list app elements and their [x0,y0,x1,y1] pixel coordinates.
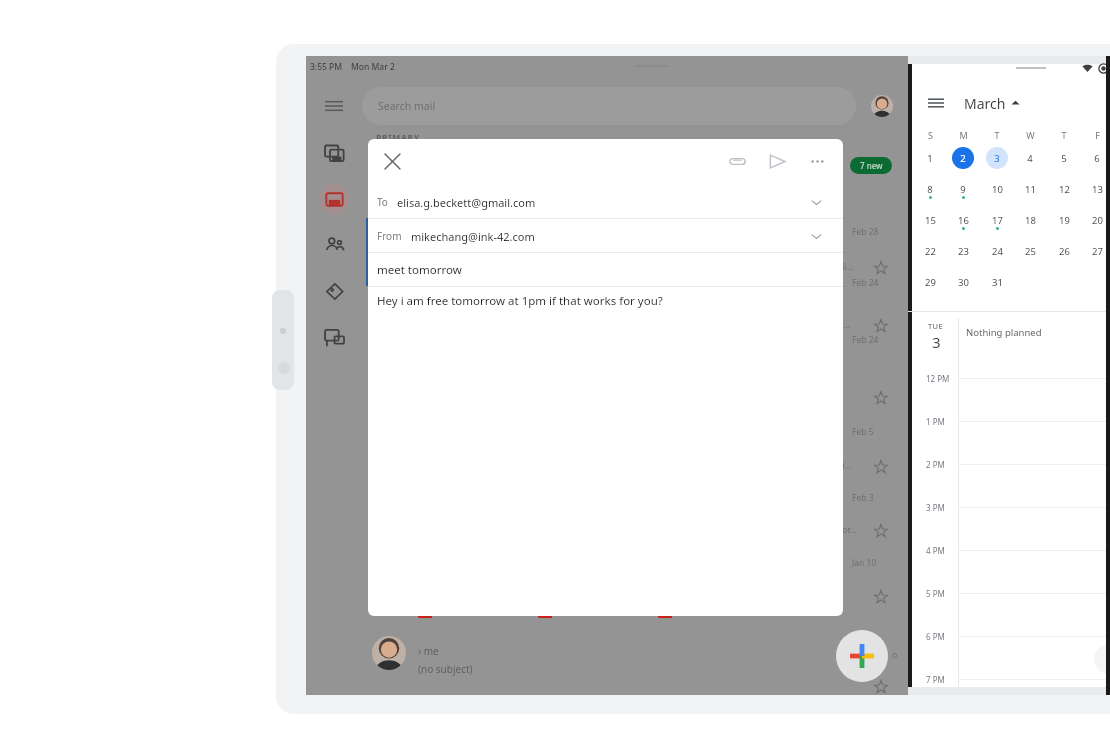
staticText: 7 PM [926,674,945,685]
staticText: 15 [925,214,936,227]
staticText: p… [838,319,850,331]
button[interactable]: Inbox [312,180,356,218]
staticText: 4 PM [926,545,945,556]
staticText: Q… [838,460,852,472]
button[interactable]: 27 [1084,238,1110,264]
button[interactable]: To [368,185,843,219]
button[interactable]: Star [872,389,890,407]
staticText: 3 [994,152,1000,165]
button[interactable]: 18 [1017,207,1043,233]
button[interactable]: Close [368,139,416,183]
button[interactable]: Social [312,226,356,264]
staticText: Hey i am free tomorrow at 1pm if that wo… [377,293,663,309]
button[interactable]: 19 [1051,207,1077,233]
button[interactable]: 30 [950,269,976,295]
button[interactable]: 12 [1051,176,1077,202]
button[interactable]: 29 [917,269,943,295]
button[interactable]: 2 [950,145,976,171]
button[interactable]: From [368,219,843,253]
button[interactable]: Attach file [717,141,757,181]
staticText: Search mail [378,99,436,113]
staticText: 3 PM [926,502,945,513]
button[interactable]: Menu [306,78,362,134]
button[interactable]: 11 [1017,176,1043,202]
button[interactable]: 17 [984,207,1010,233]
button[interactable]: 10 [984,176,1010,202]
staticText: 5 [1061,152,1067,165]
button[interactable]: 8 [917,176,943,202]
staticText: M [959,129,968,141]
staticText: 11 [1025,183,1036,196]
button[interactable]: 26 [1051,238,1077,264]
staticText: 29 [925,276,936,289]
staticText: W [1026,129,1035,141]
staticText: 10 [992,183,1003,196]
staticText: To [377,195,388,209]
staticText: 1 PM [926,416,945,427]
staticText: Feb 24 [852,277,879,289]
staticText: 30 [958,276,969,289]
button[interactable]: 13 [1084,176,1110,202]
button[interactable]: 9 [950,176,976,202]
staticText: 12 [1059,183,1070,196]
button[interactable]: 1 [917,145,943,171]
staticText: F [1095,129,1100,141]
button[interactable]: Search mail [362,87,856,125]
staticText: 25 [1025,245,1036,258]
staticText: Mon Mar 2 [351,61,395,73]
staticText: 17 [992,214,1003,227]
staticText: › me [418,644,439,658]
staticText: Jan 10 [852,557,877,569]
button[interactable]: Calendar menu [922,89,950,117]
button[interactable]: Star [872,259,890,277]
button[interactable]: 23 [950,238,976,264]
button[interactable]: Compose [836,630,888,682]
button[interactable]: Promotions [312,272,356,310]
button[interactable]: Hey i am free tomorrow at 1pm if that wo… [368,287,843,607]
button[interactable]: 7 new [850,157,892,174]
staticText: 16 [958,214,969,227]
staticText: 9 [960,183,966,196]
staticText: Feb 24 [852,334,879,346]
button[interactable]: 20 [1084,207,1110,233]
button[interactable]: 3 [984,145,1010,171]
button[interactable]: 22 [917,238,943,264]
button[interactable]: 6 [1084,145,1110,171]
button[interactable]: Star [872,588,890,606]
staticText: 13 [1092,183,1103,196]
button[interactable]: Send [757,141,797,181]
button[interactable]: 16 [950,207,976,233]
staticText: 23 [958,245,969,258]
staticText: 18 [1025,214,1036,227]
button[interactable]: More options [797,141,837,181]
staticText: 2 PM [926,459,945,470]
button[interactable]: March [964,94,1020,113]
staticText: meet tomorrow [377,262,462,278]
button[interactable]: Star [872,522,890,540]
staticText: T [994,129,1000,141]
button[interactable]: All inboxes [312,134,356,172]
button[interactable]: 24 [984,238,1010,264]
staticText: o [892,648,898,660]
button[interactable]: 31 [984,269,1010,295]
staticText: Nothing planned [966,326,1042,339]
staticText: mikechang@ink-42.com [411,229,535,244]
staticText: From [377,229,402,243]
button[interactable]: 15 [917,207,943,233]
staticText: TUE [928,321,944,331]
button[interactable]: 4 [1017,145,1043,171]
staticText: 3:55 PM [310,61,343,73]
button[interactable]: Chat [312,318,356,356]
button[interactable]: Star [872,317,890,335]
staticText: 1 [927,152,933,165]
button[interactable]: meet tomorrow [368,253,843,287]
staticText: 8 [927,183,933,196]
button[interactable]: 25 [1017,238,1043,264]
button[interactable]: Star [872,678,890,696]
staticText: 7 new [860,160,883,171]
staticText: Feb 3 [852,492,874,504]
button[interactable]: Star [872,458,890,476]
button[interactable]: 5 [1051,145,1077,171]
staticText: 6 PM [926,631,945,642]
button[interactable]: Account [856,78,908,134]
